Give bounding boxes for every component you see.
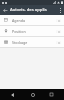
staticText: Stockage [12, 40, 55, 45]
button[interactable]: Home [26, 89, 39, 100]
button[interactable]: Stockage [0, 37, 64, 47]
staticText: Position [12, 29, 55, 34]
button[interactable]: More options [56, 5, 64, 15]
button[interactable]: Recent apps [45, 89, 58, 100]
button[interactable]: Agenda [0, 15, 64, 25]
button[interactable]: Back [6, 89, 19, 100]
button[interactable]: Toggle permission [55, 28, 61, 34]
button[interactable]: Position [0, 26, 64, 36]
staticText: Autoris. des applis [10, 7, 56, 13]
button[interactable]: Toggle permission [55, 17, 61, 23]
button[interactable]: Back [0, 5, 10, 15]
staticText: Agenda [12, 18, 55, 23]
button[interactable]: Toggle permission [55, 39, 61, 45]
